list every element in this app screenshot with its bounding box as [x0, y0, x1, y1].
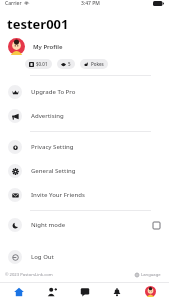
staticText: Carrier [5, 0, 22, 7]
button[interactable]: Language [133, 270, 163, 280]
button[interactable]: Home [5, 283, 33, 300]
button[interactable]: Messages [71, 283, 99, 300]
button[interactable]: Add friend [38, 283, 66, 300]
button[interactable]: Advertising [0, 104, 169, 128]
button[interactable]: $0.01 [25, 59, 52, 69]
button[interactable]: Invite Your Friends [0, 183, 169, 207]
button[interactable]: Toggle night mode [152, 221, 161, 230]
button[interactable]: Log Out [0, 245, 169, 269]
staticText: Advertising [31, 112, 64, 120]
button[interactable]: Privacy Setting [0, 135, 169, 159]
staticText: Upgrade To Pro [31, 88, 76, 96]
button[interactable]: Night mode [0, 213, 169, 237]
staticText: tester001 [7, 15, 69, 33]
button[interactable]: Notifications [103, 283, 131, 300]
staticText: Log Out [31, 253, 54, 261]
staticText: Privacy Setting [31, 143, 74, 151]
staticText: Night mode [31, 221, 66, 229]
button[interactable]: 5 [57, 59, 75, 69]
staticText: Invite Your Friends [31, 191, 85, 199]
staticText: © 2023 PastorsLink.com [5, 272, 53, 278]
staticText: Pokes [91, 61, 104, 67]
staticText: 5 [68, 61, 71, 67]
staticText: $0.01 [36, 61, 48, 67]
button[interactable]: Profile [136, 283, 164, 300]
button[interactable]: Pokes [80, 59, 108, 69]
staticText: Language [141, 272, 161, 278]
button[interactable]: My Profile [0, 36, 169, 56]
button[interactable]: General Setting [0, 159, 169, 183]
button[interactable]: Upgrade To Pro [0, 80, 169, 104]
staticText: 3:47 PM [81, 0, 100, 7]
staticText: My Profile [33, 43, 63, 51]
staticText: General Setting [31, 167, 76, 175]
